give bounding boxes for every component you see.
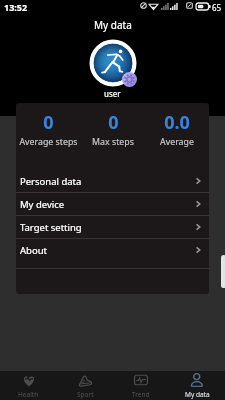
staticText: user bbox=[104, 88, 121, 99]
staticText: Max steps bbox=[92, 136, 134, 148]
staticText: 0 bbox=[108, 110, 119, 135]
staticText: Average bbox=[160, 136, 194, 148]
staticText: 65 bbox=[212, 2, 222, 13]
staticText: My device bbox=[20, 198, 65, 211]
staticText: 0.0 bbox=[164, 110, 190, 135]
staticText: My data bbox=[94, 18, 132, 32]
staticText: My data bbox=[185, 390, 210, 399]
staticText: Sport bbox=[77, 390, 94, 399]
button[interactable]: Trend bbox=[113, 371, 169, 400]
button[interactable]: My device bbox=[16, 193, 209, 215]
button[interactable]: Health bbox=[0, 371, 57, 400]
staticText: 13:52 bbox=[4, 1, 28, 13]
staticText: Target setting bbox=[20, 221, 82, 234]
button[interactable]: About bbox=[16, 239, 209, 261]
staticText: Average steps bbox=[19, 136, 78, 148]
button[interactable]: Sport bbox=[57, 371, 113, 400]
button[interactable]: Personal data bbox=[16, 170, 209, 192]
staticText: Trend bbox=[132, 390, 150, 399]
button[interactable]: Target setting bbox=[16, 216, 209, 238]
staticText: About bbox=[20, 244, 47, 257]
staticText: Personal data bbox=[20, 175, 82, 188]
staticText: Health bbox=[18, 390, 39, 399]
staticText: 0 bbox=[43, 110, 54, 135]
button[interactable]: My data bbox=[169, 371, 225, 400]
